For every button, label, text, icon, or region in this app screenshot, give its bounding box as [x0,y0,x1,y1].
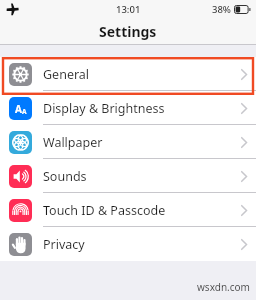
staticText: A [15,102,22,116]
staticText: 38% [212,3,231,16]
staticText: Settings [99,22,157,41]
button[interactable]: Wallpaper [0,125,256,159]
staticText: Privacy [43,236,85,253]
button[interactable]: A [0,91,256,125]
staticText: Display & Brightness [43,100,165,117]
staticText: Sounds [43,168,87,185]
button[interactable]: General [0,57,256,91]
button[interactable]: Touch ID & Passcode [0,193,256,227]
staticText: wsxdn.com [197,280,250,294]
button[interactable]: Privacy [0,227,256,261]
button[interactable]: Sounds [0,159,256,193]
staticText: Wallpaper [43,134,103,151]
staticText: General [43,66,90,83]
staticText: 13:01 [116,3,141,16]
staticText: A [22,107,27,116]
staticText: Touch ID & Passcode [43,202,166,219]
